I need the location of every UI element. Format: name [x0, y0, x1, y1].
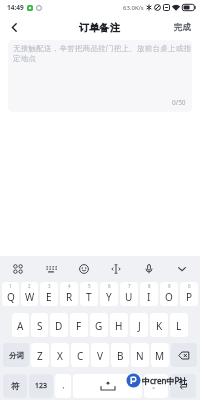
- button[interactable]: D: [50, 313, 68, 337]
- staticText: V: [97, 349, 103, 363]
- staticText: 订单备注: [79, 21, 121, 34]
- button[interactable]: F: [70, 313, 88, 337]
- button[interactable]: 3: [40, 282, 58, 306]
- button[interactable]: [176, 263, 188, 275]
- staticText: 63.0K/s: [123, 4, 144, 12]
- button[interactable]: 9: [160, 282, 178, 306]
- button[interactable]: X: [51, 343, 69, 367]
- staticText: 符: [11, 381, 20, 392]
- staticText: Q: [7, 290, 15, 304]
- staticText: C: [77, 349, 84, 363]
- staticText: J: [138, 319, 141, 333]
- staticText: S: [37, 319, 43, 333]
- staticText: 3: [48, 283, 51, 289]
- button[interactable]: [78, 263, 90, 275]
- button[interactable]: C: [71, 343, 89, 367]
- button[interactable]: Z: [31, 343, 49, 367]
- staticText: I: [147, 290, 151, 304]
- button[interactable]: 0: [180, 282, 198, 306]
- button[interactable]: [12, 263, 24, 275]
- button[interactable]: V: [91, 343, 109, 367]
- button[interactable]: L: [170, 313, 188, 337]
- staticText: 7: [128, 283, 131, 289]
- staticText: X: [57, 349, 63, 363]
- staticText: 5: [88, 283, 91, 289]
- button[interactable]: ，: [55, 374, 71, 398]
- button[interactable]: G: [90, 313, 108, 337]
- staticText: 分词: [9, 351, 24, 360]
- staticText: 4: [68, 283, 71, 289]
- button[interactable]: 无接触配送，辛苦把商品挂门把上、放前台桌上或指定地点: [8, 40, 192, 112]
- staticText: K: [156, 319, 163, 333]
- button[interactable]: [45, 263, 57, 275]
- button[interactable]: 2: [21, 282, 38, 306]
- staticText: 中cren中P社: [142, 375, 188, 386]
- staticText: E: [46, 290, 52, 304]
- button[interactable]: [0, 15, 28, 39]
- staticText: M: [155, 349, 165, 363]
- staticText: 9: [168, 283, 171, 289]
- button[interactable]: M: [151, 343, 169, 367]
- staticText: N: [136, 349, 144, 363]
- button[interactable]: 分词: [3, 343, 29, 367]
- button[interactable]: 8: [140, 282, 158, 306]
- staticText: H: [115, 319, 123, 333]
- staticText: ，: [59, 380, 67, 390]
- staticText: 0: [188, 283, 191, 289]
- staticText: 123: [35, 381, 48, 391]
- staticText: G: [95, 319, 103, 333]
- staticText: 6: [108, 283, 111, 289]
- button[interactable]: [171, 343, 197, 367]
- button[interactable]: 7: [120, 282, 138, 306]
- staticText: 订单备注: [79, 21, 121, 34]
- button[interactable]: [170, 374, 196, 398]
- staticText: T: [86, 290, 92, 304]
- button[interactable]: 5: [80, 282, 98, 306]
- staticText: 1: [9, 283, 12, 289]
- button[interactable]: 。: [144, 374, 168, 398]
- staticText: 0/50: [172, 98, 186, 107]
- button[interactable]: S: [31, 313, 48, 337]
- button[interactable]: 4: [60, 282, 78, 306]
- staticText: 2: [28, 283, 31, 289]
- staticText: P: [186, 290, 193, 304]
- staticText: R: [66, 290, 73, 304]
- staticText: A: [17, 319, 24, 333]
- staticText: W: [25, 290, 35, 304]
- staticText: U: [125, 290, 133, 304]
- button[interactable]: [110, 263, 122, 275]
- staticText: O: [165, 290, 173, 304]
- button[interactable]: A: [12, 313, 29, 337]
- staticText: 8: [148, 283, 151, 289]
- staticText: 。: [152, 380, 160, 390]
- staticText: Y: [106, 290, 112, 304]
- button[interactable]: [143, 263, 155, 275]
- button[interactable]: B: [111, 343, 129, 367]
- staticText: 14:49: [7, 3, 24, 12]
- staticText: 符: [11, 381, 20, 392]
- button[interactable]: [73, 374, 142, 398]
- staticText: 中cren中P社: [142, 375, 188, 386]
- staticText: 分词: [9, 351, 24, 360]
- staticText: 完成: [174, 22, 191, 33]
- staticText: F: [76, 319, 82, 333]
- staticText: 完成: [174, 22, 191, 33]
- button[interactable]: H: [110, 313, 128, 337]
- button[interactable]: 符: [3, 374, 27, 398]
- button[interactable]: N: [131, 343, 149, 367]
- button[interactable]: K: [150, 313, 168, 337]
- staticText: D: [55, 319, 63, 333]
- staticText: 123: [35, 381, 48, 391]
- button[interactable]: 123: [29, 374, 53, 398]
- button[interactable]: J: [130, 313, 148, 337]
- button[interactable]: 1: [2, 282, 19, 306]
- button[interactable]: 完成: [174, 22, 191, 33]
- staticText: B: [117, 349, 124, 363]
- staticText: Z: [37, 349, 43, 363]
- staticText: L: [176, 319, 182, 333]
- staticText: 无接触配送，辛苦把商品挂门把上、放前台桌上或指定地点: [13, 44, 192, 64]
- button[interactable]: 6: [100, 282, 118, 306]
